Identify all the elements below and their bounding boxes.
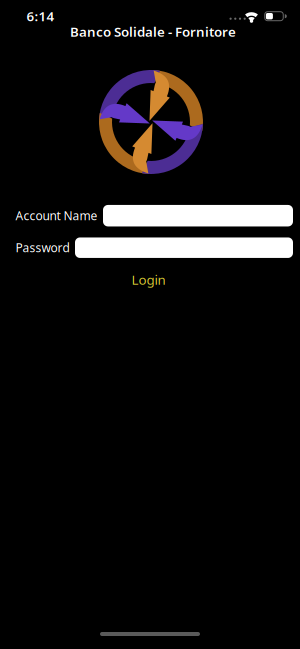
staticText: Password [15,239,69,255]
staticText: Login [131,271,165,288]
button[interactable] [75,237,293,258]
staticText: 6:14 [26,7,54,25]
button[interactable]: Login [131,271,165,288]
staticText: Banco Solidale - Fornitore [70,23,236,40]
button[interactable] [103,205,293,226]
staticText: Account Name [15,207,97,223]
